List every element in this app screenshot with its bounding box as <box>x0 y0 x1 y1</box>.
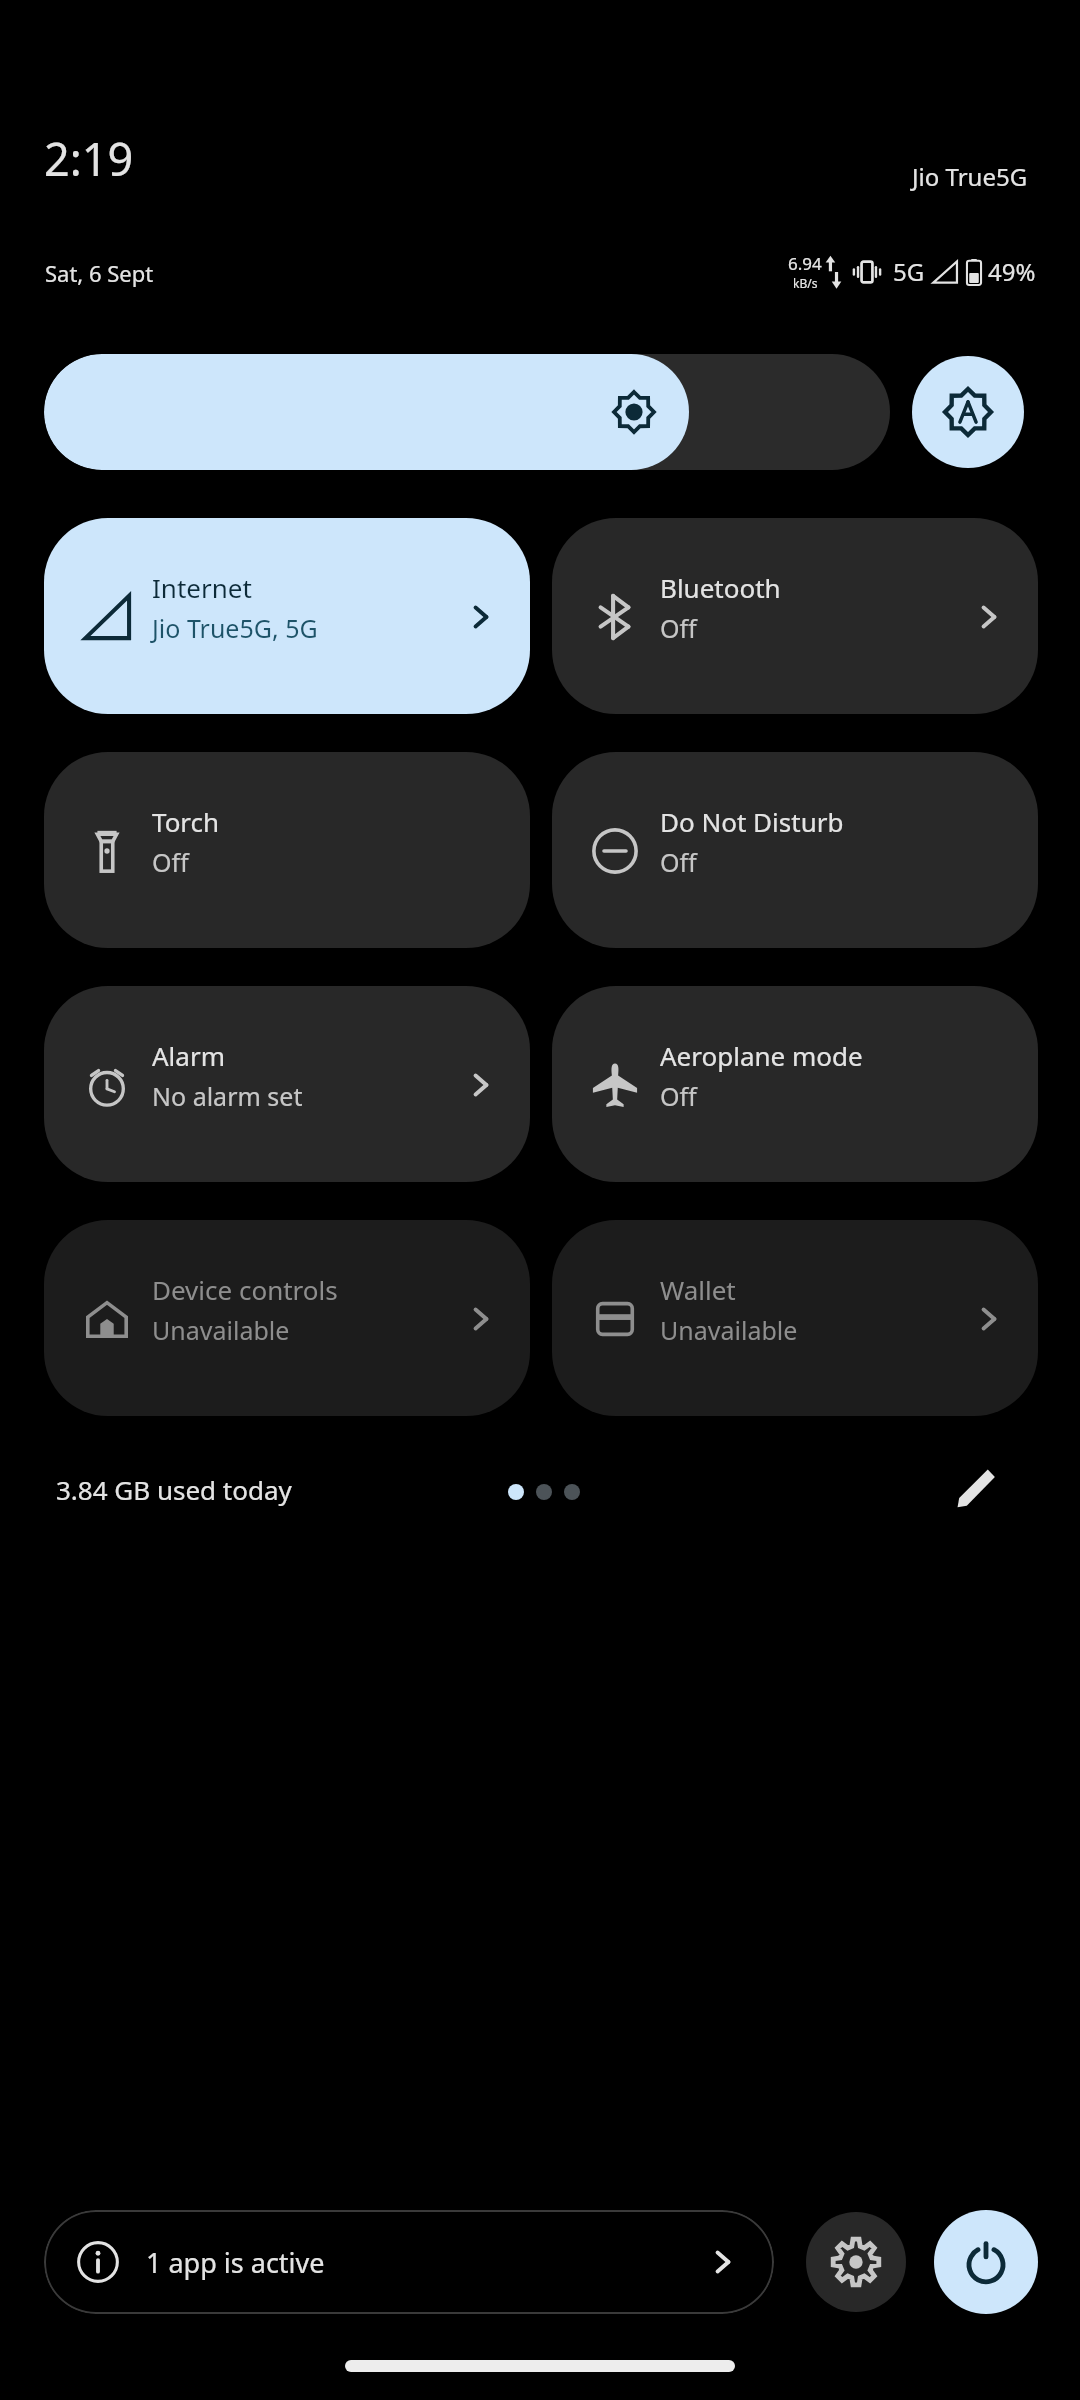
button[interactable]: 1 app is active <box>44 2210 774 2314</box>
staticText: Aeroplane mode <box>660 1038 863 1073</box>
button[interactable]: Brightness <box>44 354 890 470</box>
staticText: Internet <box>152 570 252 605</box>
staticText: 2:19 <box>44 128 134 189</box>
staticText: Jio True5G, 5G <box>152 611 318 645</box>
button[interactable]: Wallet <box>552 1220 1038 1416</box>
staticText: 6.94 <box>788 252 822 275</box>
staticText: Jio True5G <box>912 160 1028 193</box>
staticText: Do Not Disturb <box>660 804 844 839</box>
staticText: Off <box>660 1079 697 1113</box>
button[interactable]: Aeroplane mode <box>552 986 1038 1182</box>
staticText: 3.84 GB used today <box>56 1472 292 1507</box>
staticText: Alarm <box>152 1038 225 1073</box>
staticText: Off <box>152 845 189 879</box>
button[interactable]: Alarm <box>44 986 530 1182</box>
staticText: Device controls <box>152 1272 338 1307</box>
staticText: 1 app is active <box>146 2244 325 2281</box>
staticText: Bluetooth <box>660 570 781 605</box>
button[interactable]: Settings <box>806 2212 906 2312</box>
button[interactable]: Device controls <box>44 1220 530 1416</box>
staticText: kB/s <box>793 275 818 291</box>
button[interactable]: Bluetooth <box>552 518 1038 714</box>
staticText: Sat, 6 Sept <box>45 258 154 288</box>
button[interactable]: Auto brightness <box>912 356 1024 468</box>
staticText: Unavailable <box>152 1313 290 1347</box>
staticText: Off <box>660 845 697 879</box>
staticText: Torch <box>152 804 220 839</box>
staticText: Off <box>660 611 697 645</box>
button[interactable]: Internet <box>44 518 530 714</box>
staticText: Unavailable <box>660 1313 798 1347</box>
button[interactable]: Torch <box>44 752 530 948</box>
button[interactable]: Do Not Disturb <box>552 752 1038 948</box>
button[interactable]: Edit tiles <box>940 1452 1012 1524</box>
button[interactable]: Power <box>934 2210 1038 2314</box>
staticText: No alarm set <box>152 1079 303 1113</box>
staticText: Wallet <box>660 1272 736 1307</box>
staticText: 5G <box>893 255 925 288</box>
staticText: 49% <box>988 255 1036 288</box>
